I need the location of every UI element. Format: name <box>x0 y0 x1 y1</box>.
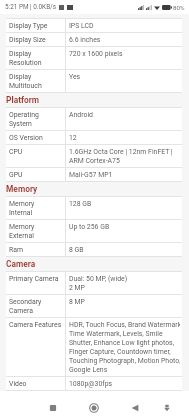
staticText: Display Size <box>9 35 46 44</box>
button[interactable]: Operating System <box>6 108 182 131</box>
button[interactable]: Camera Features <box>6 318 182 377</box>
staticText: Display Multitouch <box>9 72 42 90</box>
staticText: Memory <box>6 184 38 194</box>
staticText: Secondary Camera <box>9 297 42 315</box>
button[interactable]: Secondary Camera <box>6 295 182 318</box>
button[interactable]: Display Type <box>6 19 182 33</box>
staticText: Memory External <box>9 222 35 240</box>
button[interactable]: Display Size <box>6 33 182 47</box>
staticText: Video <box>9 379 27 388</box>
staticText: 720 x 1600 pixels <box>69 49 123 58</box>
button[interactable]: Back <box>126 399 144 417</box>
staticText: 6.6 inches <box>69 35 101 44</box>
staticText: Up to 256 GB <box>69 222 110 231</box>
staticText: 8 MP <box>69 297 85 306</box>
staticText: 128 GB <box>69 199 92 208</box>
staticText: IPS LCD <box>69 21 94 30</box>
staticText: Platform <box>6 95 40 105</box>
button[interactable]: Home <box>85 399 103 417</box>
staticText: CPU <box>9 147 23 156</box>
staticText: 80% <box>173 4 185 11</box>
button[interactable]: Hide keyboard <box>158 399 176 417</box>
button[interactable]: Display Resolution <box>6 47 182 70</box>
button[interactable]: OS Version <box>6 131 182 145</box>
button[interactable]: Display Multitouch <box>6 70 182 93</box>
staticText: Display Resolution <box>9 49 42 67</box>
staticText: 1.6GHz Octa Core | 12nm FinFET | ARM Cor… <box>69 147 173 165</box>
staticText: Display Type <box>9 21 48 30</box>
staticText: OS Version <box>9 133 43 142</box>
button[interactable]: Memory External <box>6 220 182 243</box>
button[interactable]: CPU <box>6 145 182 168</box>
staticText: Mali-G57 MP1 <box>69 170 113 179</box>
staticText: GPU <box>9 170 23 179</box>
staticText: Memory Internal <box>9 199 35 217</box>
staticText: 5:21 PM | 0.0KB/s <box>5 3 57 11</box>
staticText: 8 GB <box>69 245 84 254</box>
staticText: Yes <box>69 72 81 81</box>
staticText: Operating System <box>9 110 39 128</box>
button[interactable]: GPU <box>6 168 182 182</box>
staticText: Ram <box>9 245 24 254</box>
staticText: HDR, Touch Focus, Brand Watermark, Time … <box>69 320 180 374</box>
button[interactable]: Video <box>6 377 182 391</box>
staticText: Camera Features <box>9 320 62 329</box>
staticText: Android <box>69 110 93 119</box>
button[interactable]: Recents <box>44 399 62 417</box>
staticText: 1080p@30fps <box>69 379 113 388</box>
button[interactable]: Memory Internal <box>6 197 182 220</box>
button[interactable]: Primary Camera <box>6 272 182 295</box>
button[interactable]: Ram <box>6 243 182 257</box>
staticText: Dual: 50 MP, (wide) 2 MP <box>69 274 128 292</box>
staticText: Primary Camera <box>9 274 59 283</box>
staticText: 12 <box>69 133 77 142</box>
staticText: Camera <box>6 259 36 269</box>
